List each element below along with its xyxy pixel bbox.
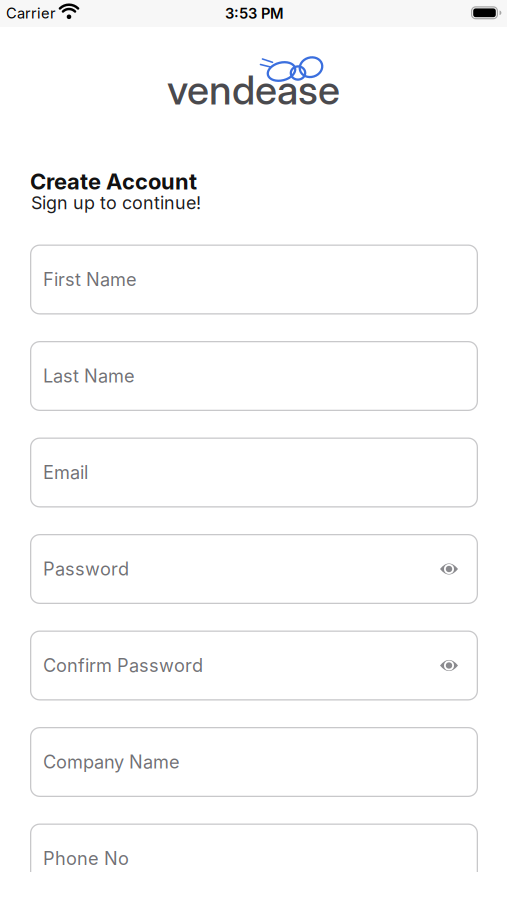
staticText: vendease [167, 66, 340, 114]
button[interactable]: Company Name [30, 727, 478, 797]
button[interactable]: Password [30, 534, 478, 604]
button[interactable]: Show password [434, 652, 464, 678]
button[interactable]: Email [30, 437, 478, 507]
staticText: Phone No [43, 847, 129, 869]
staticText: 3:53 PM [225, 5, 284, 22]
staticText: Carrier [6, 4, 56, 22]
staticText: Password [43, 558, 129, 580]
staticText: Confirm Password [43, 654, 203, 676]
button[interactable]: Phone No [30, 823, 478, 893]
staticText: Create Account [30, 168, 197, 195]
button[interactable]: Show password [434, 556, 464, 582]
button[interactable]: Last Name [30, 341, 478, 411]
staticText: Sign up to continue! [31, 192, 201, 214]
staticText: Last Name [43, 365, 135, 387]
button[interactable]: First Name [30, 244, 478, 314]
staticText: First Name [43, 268, 137, 290]
button[interactable]: Confirm Password [30, 630, 478, 700]
staticText: Company Name [43, 751, 180, 773]
staticText: Email [43, 461, 88, 483]
